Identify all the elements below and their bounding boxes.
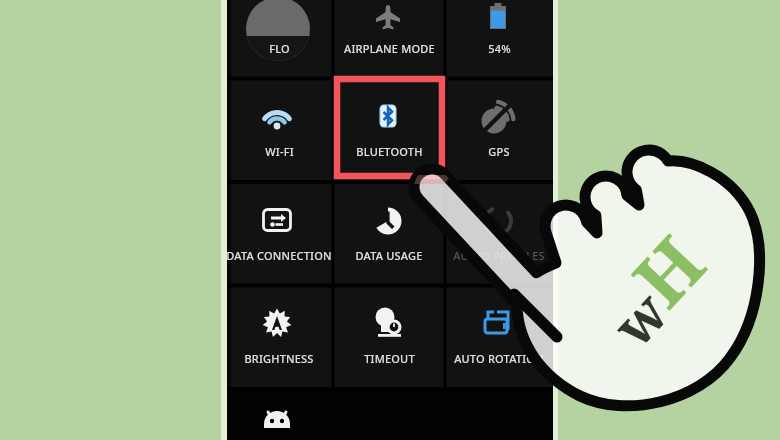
staticText: 54% — [488, 41, 511, 56]
staticText: H — [610, 214, 725, 326]
button[interactable]: DATA USAGE — [333, 244, 445, 266]
staticText: BLUETOOTH — [356, 144, 423, 159]
staticText: DATA CONNECTION — [226, 248, 332, 263]
staticText: WI-FI — [265, 144, 294, 159]
button[interactable]: AUDIO PROFILES — [443, 244, 555, 266]
staticText: w — [595, 275, 683, 362]
button[interactable]: DATA CONNECTION — [223, 244, 335, 266]
button[interactable]: BRIGHTNESS — [223, 347, 335, 369]
button[interactable]: FLO — [223, 37, 335, 59]
button[interactable]: AUTO ROTATION — [443, 347, 555, 369]
staticText: GPS — [488, 144, 510, 159]
button[interactable]: WI-FI — [223, 140, 335, 162]
staticText: DATA USAGE — [355, 248, 423, 263]
button[interactable]: 54% — [443, 37, 555, 59]
staticText: FLO — [269, 41, 290, 56]
staticText: BRIGHTNESS — [244, 351, 314, 366]
button[interactable]: GPS — [443, 140, 555, 162]
staticText: AIRPLANE MODE — [344, 41, 435, 56]
staticText: AUTO ROTATION — [454, 351, 544, 366]
button[interactable]: AIRPLANE MODE — [333, 37, 445, 59]
button[interactable]: TIMEOUT — [333, 347, 445, 369]
button[interactable]: BLUETOOTH — [333, 140, 445, 162]
staticText: AUDIO PROFILES — [453, 248, 545, 263]
staticText: TIMEOUT — [364, 351, 415, 366]
